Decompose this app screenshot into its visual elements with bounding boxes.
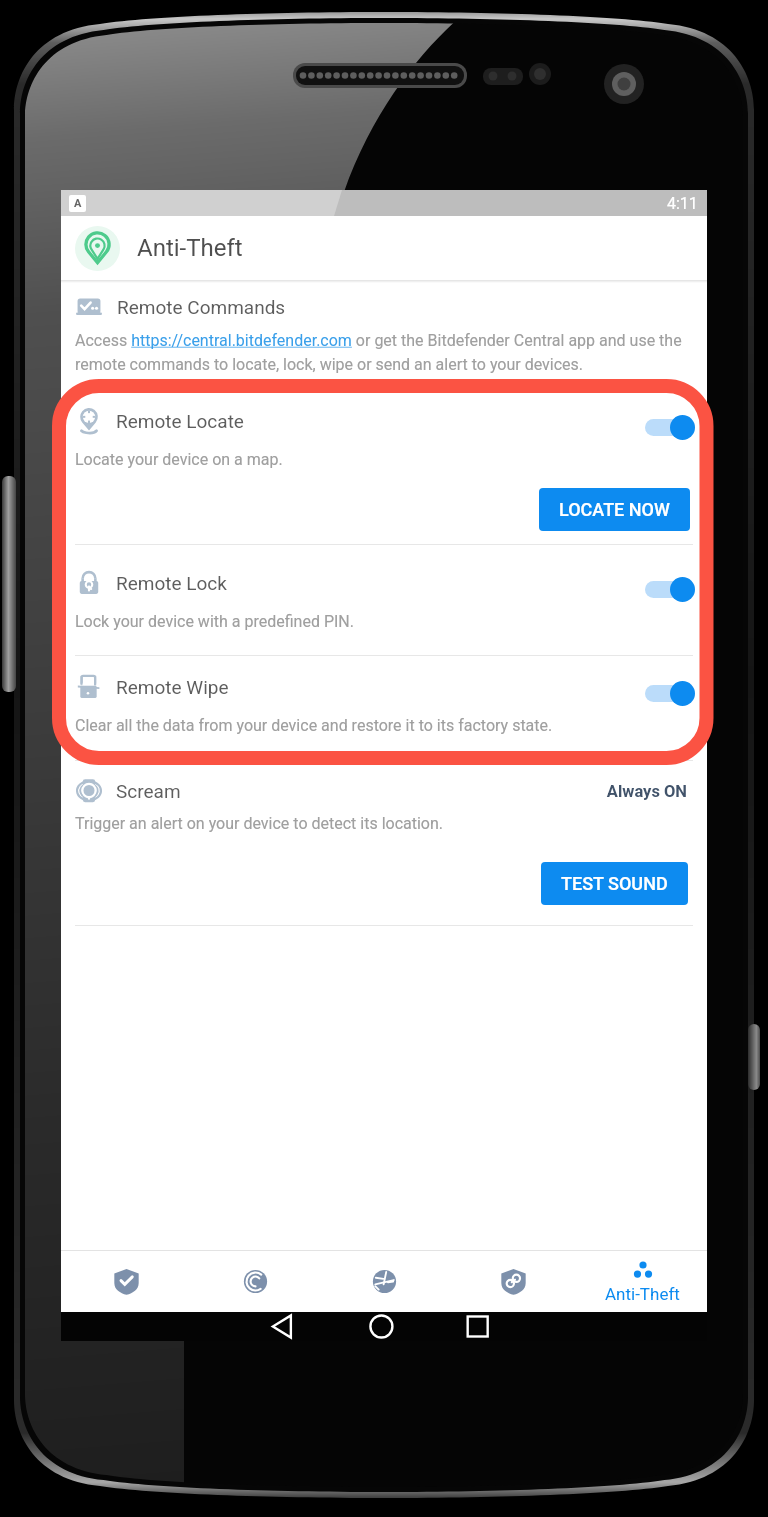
button[interactable]: Remote Locate toggle <box>645 411 695 443</box>
button[interactable]: Account Privacy <box>449 1251 578 1312</box>
staticText: Anti-Theft <box>605 1284 680 1304</box>
staticText: A <box>74 197 82 210</box>
staticText: TEST SOUND <box>561 873 668 894</box>
staticText: Remote Wipe <box>116 676 229 698</box>
staticText: Access https://central.bitdefender.com o… <box>75 331 700 374</box>
button[interactable]: Remote Lock toggle <box>645 573 695 605</box>
staticText: Remote Commands <box>117 296 286 318</box>
button[interactable]: Autopilot <box>191 1251 320 1312</box>
staticText: Trigger an alert on your device to detec… <box>75 814 444 833</box>
button[interactable]: Web Protection <box>320 1251 449 1312</box>
staticText: Scream <box>116 780 181 802</box>
staticText: LOCATE NOW <box>559 499 670 520</box>
button[interactable]: LOCATE NOW <box>539 488 690 531</box>
button[interactable]: Anti-Theft <box>578 1251 707 1312</box>
staticText: 4:11 <box>667 194 698 213</box>
staticText: Clear all the data from your device and … <box>75 716 553 735</box>
button[interactable]: Protection <box>61 1251 191 1312</box>
staticText: Anti-Theft <box>137 234 243 262</box>
staticText: Remote Locate <box>116 410 244 432</box>
staticText: Always ON <box>476 782 687 801</box>
staticText: Locate your device on a map. <box>75 450 283 469</box>
button[interactable]: TEST SOUND <box>541 862 688 905</box>
staticText: Lock your device with a predefined PIN. <box>75 612 354 631</box>
staticText: Remote Lock <box>116 572 227 594</box>
button[interactable]: Remote Wipe toggle <box>645 677 695 709</box>
